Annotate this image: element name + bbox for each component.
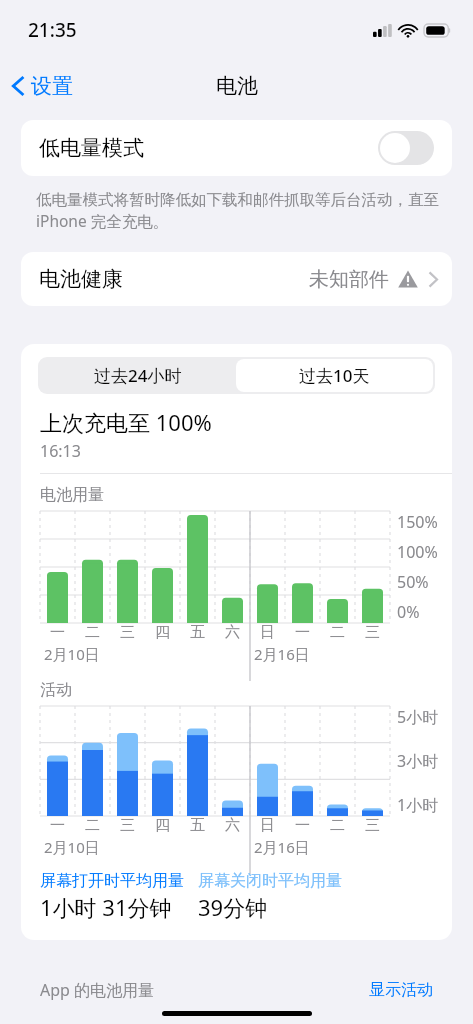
staticText: 过去10天 [299,364,370,387]
button[interactable]: 设置 [0,67,83,105]
staticText: 一 [50,816,65,835]
staticText: 0% [397,601,420,623]
staticText: 100% [397,541,438,563]
staticText: 21:35 [28,17,77,43]
staticText: 六 [225,623,240,642]
staticText: 150% [397,511,438,533]
staticText: 50% [397,571,429,593]
staticText: 2月10日 [44,644,100,664]
staticText: 二 [330,623,345,642]
staticText: 三 [120,816,135,835]
staticText: 日 [260,816,275,835]
staticText: 5小时 [397,706,439,728]
staticText: 电池健康 [39,266,123,292]
staticText: 电池用量 [40,485,104,505]
staticText: 一 [295,816,310,835]
staticText: 2月16日 [254,644,310,664]
staticText: 上次充电至 100% [40,407,212,437]
staticText: 低电量模式将暂时降低如下载和邮件抓取等后台活动，直至 iPhone 完全充电。 [36,188,443,232]
staticText: 1小时 31分钟 [40,892,172,922]
button[interactable]: 过去24小时 [40,359,236,392]
staticText: 二 [330,816,345,835]
staticText: 屏幕关闭时平均用量 [198,871,342,891]
staticText: 16:13 [40,440,81,462]
staticText: 活动 [40,680,72,700]
staticText: 设置 [31,73,73,99]
staticText: 电池 [216,73,258,99]
staticText: 日 [260,623,275,642]
staticText: 五 [190,816,205,835]
button[interactable]: 过去10天 [236,359,433,392]
staticText: 未知部件 [309,267,389,292]
staticText: 2月16日 [254,837,310,857]
staticText: 39分钟 [198,892,268,922]
button[interactable]: 低电量模式 [21,120,452,176]
button[interactable]: 低电量模式开关 [378,131,434,165]
staticText: 过去24小时 [94,364,182,387]
staticText: 三 [120,623,135,642]
staticText: 1小时 [397,794,439,816]
staticText: 五 [190,623,205,642]
staticText: 二 [85,623,100,642]
staticText: 2月10日 [44,837,100,857]
staticText: 六 [225,816,240,835]
staticText: 四 [155,816,170,835]
staticText: 屏幕打开时平均用量 [40,871,184,891]
button[interactable]: 显示活动 [369,980,433,1000]
staticText: 三 [365,623,380,642]
staticText: 3小时 [397,750,439,772]
staticText: 一 [295,623,310,642]
button[interactable]: 电池健康 [21,252,452,306]
staticText: 低电量模式 [39,135,144,161]
staticText: 一 [50,623,65,642]
staticText: App 的电池用量 [40,979,155,1001]
staticText: 四 [155,623,170,642]
staticText: 二 [85,816,100,835]
staticText: 三 [365,816,380,835]
